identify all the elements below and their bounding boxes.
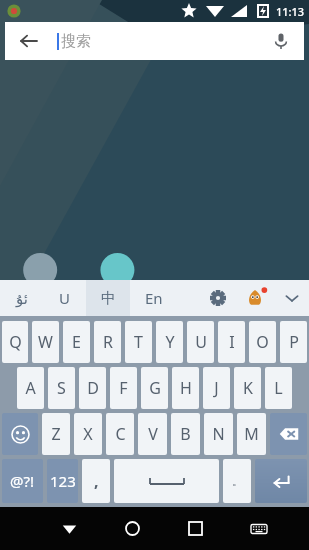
button[interactable]: , — [82, 459, 110, 503]
button[interactable]: Space — [114, 459, 219, 503]
button[interactable]: En — [130, 280, 178, 316]
button[interactable]: I — [218, 321, 245, 363]
button[interactable]: Switch keyboard — [227, 507, 290, 550]
button[interactable]: Hide keyboard — [274, 280, 309, 316]
button[interactable]: Emoji — [2, 413, 38, 455]
staticText: K — [243, 377, 253, 399]
button[interactable]: F — [110, 367, 137, 409]
staticText: 中 — [101, 289, 116, 308]
button[interactable]: O — [249, 321, 276, 363]
staticText: P — [289, 331, 299, 353]
button[interactable]: U — [43, 280, 86, 316]
button[interactable]: Recents — [164, 507, 227, 550]
staticText: ئۇ — [16, 290, 28, 307]
staticText: I — [229, 331, 235, 353]
staticText: C — [115, 423, 126, 445]
button[interactable]: Backspace — [270, 413, 307, 455]
button[interactable]: Q — [2, 321, 28, 363]
button[interactable]: Voice search — [264, 24, 298, 58]
button[interactable]: Back — [38, 507, 101, 550]
button[interactable]: G — [141, 367, 168, 409]
staticText: R — [103, 331, 113, 353]
staticText: T — [134, 331, 143, 353]
staticText: Q — [9, 331, 22, 353]
staticText: G — [149, 377, 161, 399]
button[interactable]: U — [187, 321, 214, 363]
button[interactable]: W — [32, 321, 59, 363]
button[interactable]: T — [125, 321, 152, 363]
button[interactable]: Y — [156, 321, 183, 363]
button[interactable]: K — [234, 367, 261, 409]
staticText: 11:13 — [276, 4, 305, 19]
staticText: 123 — [50, 471, 76, 491]
button[interactable]: Back — [11, 24, 45, 58]
staticText: 搜索 — [61, 32, 91, 51]
staticText: B — [180, 423, 191, 445]
staticText: En — [145, 288, 163, 308]
button[interactable]: Mascot — [235, 280, 274, 316]
staticText: X — [83, 423, 93, 445]
staticText: Z — [51, 423, 61, 445]
button[interactable]: R — [94, 321, 121, 363]
staticText: H — [180, 377, 192, 399]
staticText: S — [57, 377, 66, 399]
button[interactable]: L — [265, 367, 292, 409]
staticText: L — [274, 377, 283, 399]
button[interactable]: A — [17, 367, 44, 409]
staticText: V — [148, 423, 158, 445]
button[interactable]: M — [237, 413, 266, 455]
staticText: N — [212, 423, 225, 445]
button[interactable]: 。 — [223, 459, 251, 503]
button[interactable]: V — [138, 413, 167, 455]
staticText: J — [214, 377, 219, 399]
button[interactable]: S — [48, 367, 75, 409]
button[interactable]: J — [203, 367, 230, 409]
button[interactable]: P — [280, 321, 307, 363]
button[interactable]: Settings — [200, 280, 235, 316]
button[interactable]: B — [171, 413, 200, 455]
button[interactable]: C — [106, 413, 134, 455]
button[interactable]: Back — [5, 22, 304, 60]
staticText: U — [195, 331, 207, 353]
button[interactable]: Z — [42, 413, 70, 455]
button[interactable]: E — [63, 321, 90, 363]
staticText: A — [25, 377, 36, 399]
staticText: W — [38, 331, 53, 353]
staticText: F — [119, 377, 128, 399]
button[interactable]: H — [172, 367, 199, 409]
staticText: @?! — [10, 471, 35, 491]
staticText: E — [72, 331, 81, 353]
staticText: Y — [165, 331, 175, 353]
button[interactable]: X — [74, 413, 102, 455]
button[interactable]: Home — [101, 507, 164, 550]
button[interactable]: @?! — [2, 459, 43, 503]
button[interactable]: N — [204, 413, 233, 455]
button[interactable]: 123 — [47, 459, 78, 503]
staticText: U — [59, 288, 70, 308]
staticText: , — [94, 470, 99, 492]
button[interactable]: ئۇ — [0, 280, 43, 316]
button[interactable]: D — [79, 367, 106, 409]
staticText: O — [256, 331, 269, 353]
button[interactable]: 中 — [86, 280, 130, 316]
button[interactable]: Enter — [255, 459, 307, 503]
staticText: M — [244, 423, 259, 445]
staticText: 。 — [232, 474, 243, 488]
staticText: D — [87, 377, 99, 399]
